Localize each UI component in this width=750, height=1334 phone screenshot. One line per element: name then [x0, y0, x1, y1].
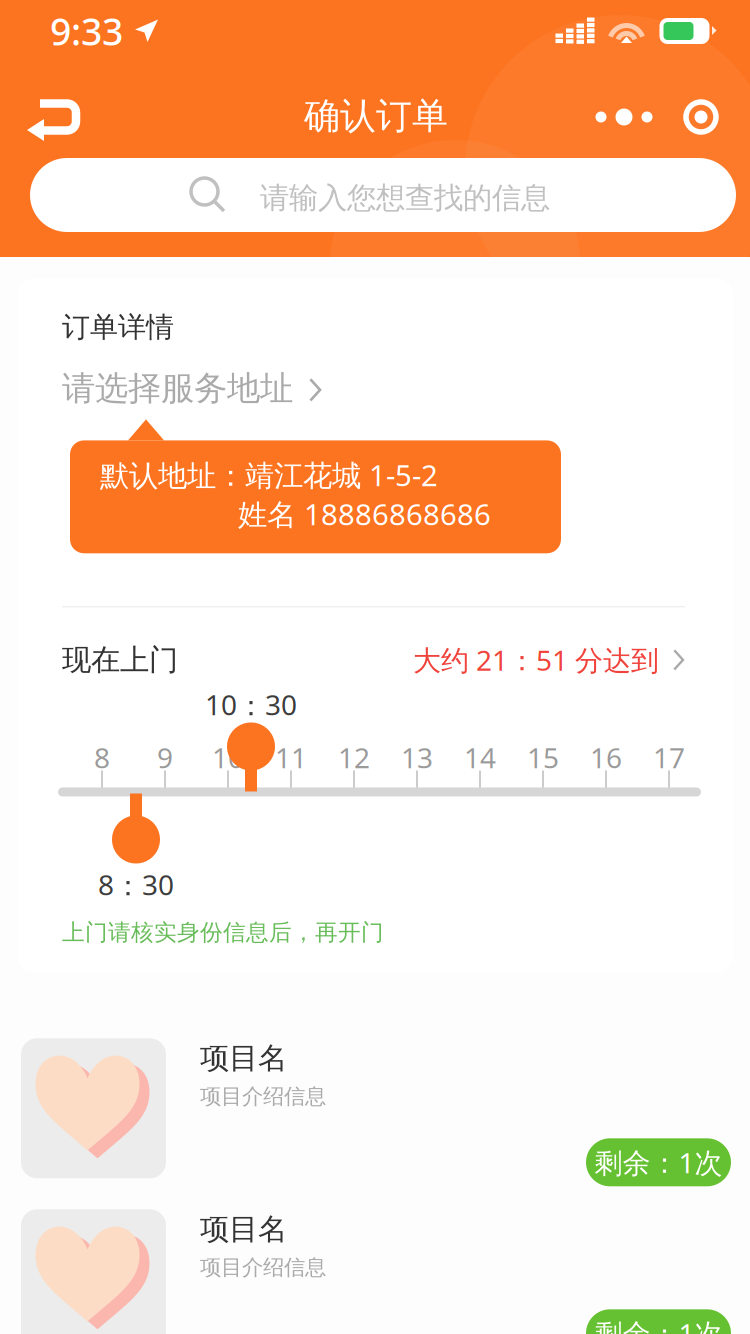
staticText: 14 — [464, 739, 496, 776]
staticText: 大约 21：51 分达到 — [413, 641, 659, 678]
button[interactable]: 大约 21：51 分达到 — [413, 641, 685, 678]
staticText: 10 — [212, 739, 244, 776]
staticText: 项目名 — [200, 1040, 287, 1076]
staticText: 项目介绍信息 — [200, 1083, 326, 1110]
staticText: 9 — [157, 739, 173, 776]
staticText: 15 — [527, 739, 559, 776]
staticText: 8：30 — [98, 866, 174, 903]
button[interactable]: 剩余：1次 — [586, 1138, 731, 1186]
staticText: 现在上门 — [62, 642, 178, 678]
staticText: 请输入您想查找的信息 — [260, 180, 550, 216]
staticText: 10：30 — [205, 686, 297, 723]
staticText: 剩余：1次 — [594, 1315, 722, 1334]
staticText: 订单详情 — [62, 310, 174, 344]
staticText: 11 — [275, 739, 307, 776]
staticText: 剩余：1次 — [594, 1144, 722, 1181]
staticText: 13 — [401, 739, 433, 776]
button[interactable]: 剩余：1次 — [586, 1309, 731, 1334]
staticText: 项目名 — [200, 1211, 287, 1247]
button[interactable]: 请输入您想查找的信息 — [30, 158, 736, 232]
staticText: 9:33 — [50, 6, 123, 56]
staticText: 上门请核实身份信息后，再开门 — [62, 918, 384, 946]
staticText: 默认地址：靖江花城 1-5-2 — [100, 455, 438, 494]
staticText: 17 — [653, 739, 685, 776]
staticText: 12 — [338, 739, 370, 776]
staticText: 项目介绍信息 — [200, 1254, 326, 1281]
staticText: 8 — [94, 739, 110, 776]
staticText: 确认订单 — [304, 94, 448, 138]
staticText: 16 — [590, 739, 622, 776]
button[interactable]: More — [586, 85, 662, 149]
button[interactable]: Record — [669, 85, 733, 149]
button[interactable]: Back — [26, 95, 114, 167]
staticText: 请选择服务地址 — [62, 368, 293, 409]
staticText: 姓名 18886868686 — [238, 494, 491, 533]
button[interactable]: 请选择服务地址 — [62, 362, 685, 414]
